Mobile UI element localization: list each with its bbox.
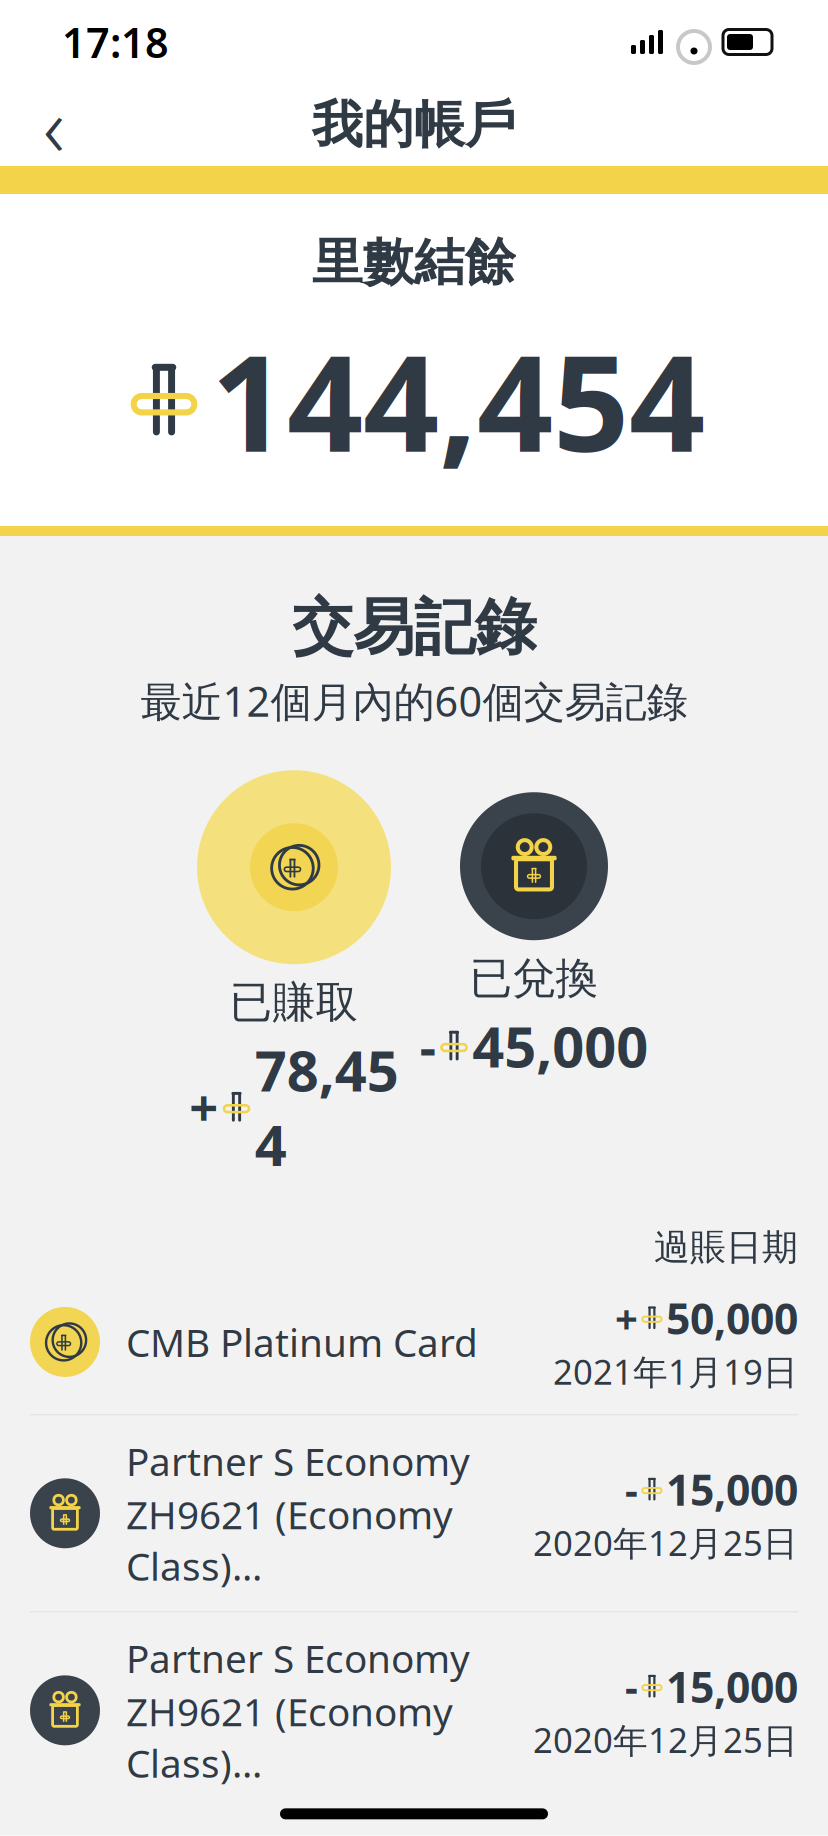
- staticText: 15,000: [666, 1658, 798, 1715]
- staticText: 交易記錄: [292, 590, 536, 665]
- button[interactable]: Partner S Economy: [0, 1415, 828, 1611]
- button[interactable]: CMB Platinum Card: [0, 1270, 828, 1414]
- staticText: 最近12個月內的60個交易記錄: [140, 673, 687, 728]
- staticText: 已賺取: [229, 976, 358, 1029]
- staticText: 里數結餘: [312, 231, 516, 294]
- staticText: ‹: [43, 70, 65, 180]
- staticText: 已兌換: [469, 952, 598, 1005]
- button[interactable]: Partner S Economy: [0, 1612, 828, 1808]
- staticText: +: [615, 1291, 638, 1344]
- staticText: 2021年1月19日: [553, 1348, 798, 1394]
- button[interactable]: Back: [14, 85, 94, 165]
- staticText: Partner S Economy: [126, 1435, 470, 1487]
- staticText: Partner S Economy: [126, 1632, 470, 1684]
- staticText: 45,000: [472, 1009, 648, 1083]
- staticText: +: [189, 1073, 218, 1141]
- staticText: CMB Platinum Card: [126, 1316, 478, 1368]
- staticText: 78,454: [255, 1033, 399, 1181]
- staticText: 144,454: [211, 312, 705, 489]
- staticText: 過賬日期: [654, 1225, 798, 1270]
- staticText: ZH9621 (Economy Class)...: [126, 1686, 453, 1788]
- staticText: 我的帳戶: [312, 94, 516, 156]
- staticText: -: [625, 1463, 638, 1516]
- staticText: 2020年12月25日: [533, 1520, 798, 1566]
- staticText: 50,000: [666, 1290, 798, 1346]
- staticText: -: [625, 1660, 638, 1713]
- staticText: 17:18: [62, 15, 169, 69]
- staticText: -: [420, 1012, 436, 1079]
- staticText: 15,000: [666, 1461, 798, 1518]
- staticText: 2020年12月25日: [533, 1717, 798, 1763]
- staticText: ZH9621 (Economy Class)...: [126, 1489, 453, 1591]
